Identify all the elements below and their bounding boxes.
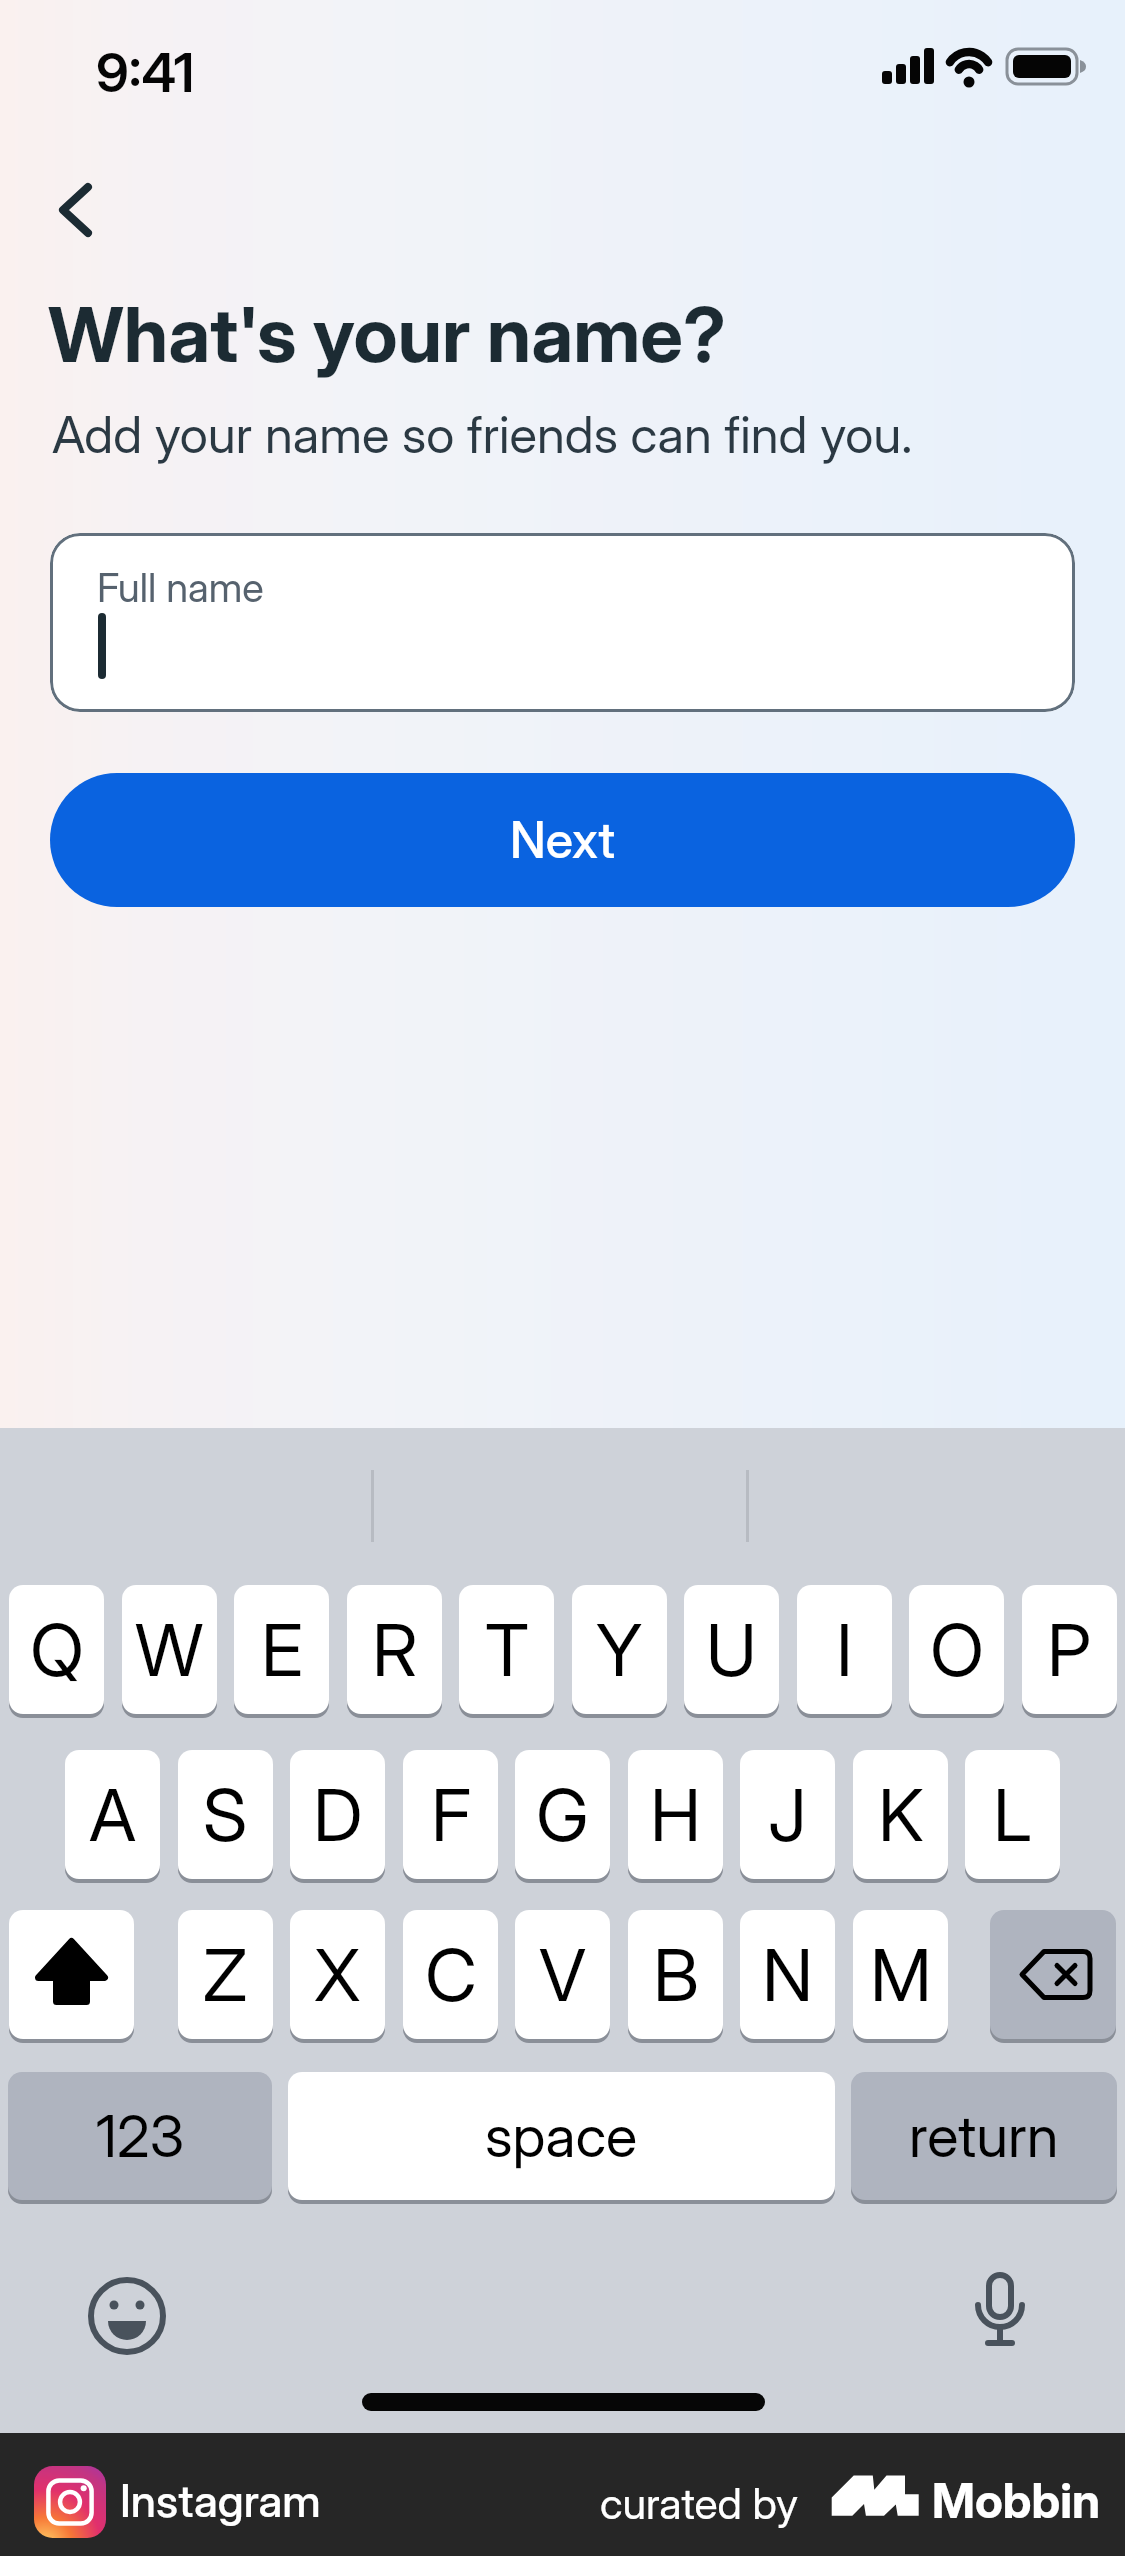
- button[interactable]: Full name: [50, 533, 1075, 712]
- button[interactable]: V: [515, 1910, 610, 2039]
- button[interactable]: M: [853, 1910, 948, 2039]
- staticText: P: [1047, 1606, 1092, 1693]
- staticText: space: [485, 2101, 638, 2171]
- button[interactable]: J: [740, 1750, 835, 1879]
- staticText: Q: [30, 1606, 84, 1693]
- staticText: T: [485, 1606, 529, 1693]
- button[interactable]: S: [178, 1750, 273, 1879]
- staticText: W: [135, 1606, 204, 1693]
- staticText: F: [431, 1771, 471, 1858]
- staticText: Add your name so friends can find you.: [52, 404, 913, 466]
- button[interactable]: O: [909, 1585, 1004, 1714]
- button[interactable]: R: [347, 1585, 442, 1714]
- staticText: Z: [203, 1931, 248, 2018]
- button[interactable]: H: [628, 1750, 723, 1879]
- button[interactable]: K: [853, 1750, 948, 1879]
- staticText: return: [909, 2101, 1059, 2171]
- staticText: V: [539, 1931, 587, 2018]
- button[interactable]: Z: [178, 1910, 273, 2039]
- staticText: 123: [96, 2101, 185, 2171]
- staticText: S: [203, 1771, 248, 1858]
- staticText: X: [314, 1931, 361, 2018]
- staticText: I: [836, 1606, 853, 1693]
- button[interactable]: G: [515, 1750, 610, 1879]
- button[interactable]: Y: [572, 1585, 667, 1714]
- button[interactable]: U: [684, 1585, 779, 1714]
- staticText: B: [653, 1931, 699, 2018]
- button[interactable]: F: [403, 1750, 498, 1879]
- staticText: Full name: [97, 563, 264, 611]
- button[interactable]: [962, 2273, 1038, 2359]
- button[interactable]: A: [65, 1750, 160, 1879]
- button[interactable]: C: [403, 1910, 498, 2039]
- button[interactable]: Q: [9, 1585, 104, 1714]
- button[interactable]: N: [740, 1910, 835, 2039]
- button[interactable]: B: [628, 1910, 723, 2039]
- button[interactable]: [88, 2277, 166, 2355]
- button[interactable]: D: [290, 1750, 385, 1879]
- button[interactable]: E: [234, 1585, 329, 1714]
- button[interactable]: Next: [50, 773, 1075, 907]
- staticText: R: [372, 1606, 418, 1693]
- staticText: H: [650, 1771, 701, 1858]
- button[interactable]: X: [290, 1910, 385, 2039]
- button[interactable]: [9, 1910, 134, 2039]
- staticText: U: [706, 1606, 757, 1693]
- staticText: Mobbin: [932, 2471, 1101, 2529]
- staticText: curated by: [600, 2477, 798, 2529]
- button[interactable]: L: [965, 1750, 1060, 1879]
- button[interactable]: return: [851, 2072, 1117, 2200]
- staticText: G: [536, 1771, 589, 1858]
- button[interactable]: I: [797, 1585, 892, 1714]
- staticText: K: [878, 1771, 924, 1858]
- button[interactable]: [40, 165, 130, 255]
- staticText: O: [930, 1606, 984, 1693]
- button[interactable]: space: [288, 2072, 835, 2200]
- staticText: D: [313, 1771, 363, 1858]
- staticText: L: [993, 1771, 1032, 1858]
- button[interactable]: P: [1022, 1585, 1117, 1714]
- staticText: 9:41: [96, 40, 195, 105]
- staticText: J: [768, 1771, 807, 1858]
- button[interactable]: T: [459, 1585, 554, 1714]
- staticText: E: [261, 1606, 303, 1693]
- button[interactable]: [990, 1910, 1116, 2039]
- staticText: N: [762, 1931, 814, 2018]
- staticText: Next: [510, 810, 615, 870]
- staticText: C: [425, 1931, 477, 2018]
- staticText: M: [870, 1931, 932, 2018]
- staticText: Instagram: [120, 2473, 321, 2527]
- staticText: What's your name?: [48, 288, 727, 380]
- staticText: Y: [596, 1606, 643, 1693]
- staticText: A: [89, 1771, 137, 1858]
- button[interactable]: W: [122, 1585, 217, 1714]
- button[interactable]: 123: [8, 2072, 272, 2200]
